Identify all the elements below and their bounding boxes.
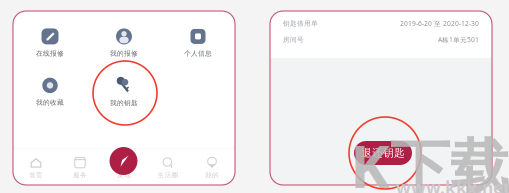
staticText: www.kkx.net [396, 176, 509, 193]
staticText: 我的报修 [110, 49, 138, 58]
staticText: 2019-6-20 至 2020-12-30 [400, 19, 479, 28]
staticText: 个人信息 [184, 49, 212, 58]
staticText: 房间号 [283, 36, 304, 44]
staticText: 服务 [73, 171, 87, 179]
button[interactable]: 我的报修 [87, 23, 161, 63]
button[interactable]: 服务 [58, 153, 102, 183]
staticText: 我的 [205, 171, 219, 179]
staticText: A栋1单元501 [438, 35, 479, 44]
button[interactable]: 发现 [109, 147, 137, 175]
button[interactable]: 在线报修 [13, 23, 87, 63]
button[interactable]: 我的 [190, 153, 234, 183]
staticText: 我的收藏 [36, 98, 64, 107]
staticText: 我的钥匙 [110, 99, 138, 107]
staticText: 钥匙借用单 [283, 19, 318, 27]
button[interactable]: 退还钥匙 [354, 141, 412, 165]
staticText: 首页 [29, 171, 43, 179]
staticText: 在线报修 [36, 49, 64, 58]
staticText: K下载 [350, 125, 509, 193]
staticText: 发现 [117, 171, 131, 179]
staticText: 退还钥匙 [361, 146, 405, 159]
button[interactable]: 我的钥匙 [87, 72, 161, 112]
button[interactable]: 生活圈 [146, 153, 190, 183]
button[interactable]: 我的收藏 [13, 72, 87, 112]
button[interactable]: 个人信息 [161, 23, 235, 63]
button[interactable]: 首页 [14, 153, 58, 183]
staticText: 生活圈 [157, 171, 178, 179]
